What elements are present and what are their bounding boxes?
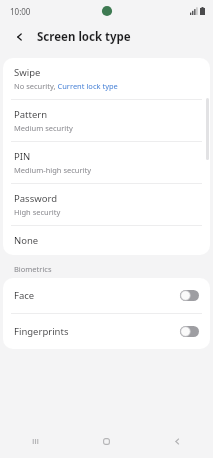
staticText: Medium security [14, 123, 73, 133]
button[interactable]: Face [3, 278, 210, 313]
staticText: No security, Current lock type [14, 81, 118, 91]
button[interactable]: Back [142, 424, 213, 458]
staticText: 10:00 [10, 6, 31, 17]
button[interactable]: Pattern [3, 100, 210, 141]
button[interactable]: Swipe [3, 58, 210, 99]
staticText: Password [14, 192, 57, 205]
button[interactable]: None [3, 226, 210, 255]
button[interactable]: Home [71, 424, 142, 458]
button[interactable]: Recents [0, 424, 71, 458]
staticText: Screen lock type [37, 29, 131, 45]
staticText: Biometrics [14, 264, 52, 274]
button[interactable]: Fingerprints [3, 314, 210, 349]
staticText: High security [14, 207, 61, 217]
button[interactable]: Password [3, 184, 210, 225]
staticText: None [14, 234, 39, 247]
button[interactable]: Back [11, 28, 29, 46]
staticText: Fingerprints [14, 325, 69, 338]
staticText: Face [14, 289, 35, 302]
staticText: Swipe [14, 66, 41, 79]
button[interactable]: PIN [3, 142, 210, 183]
staticText: Pattern [14, 108, 48, 121]
staticText: PIN [14, 150, 31, 163]
staticText: Medium-high security [14, 165, 92, 175]
